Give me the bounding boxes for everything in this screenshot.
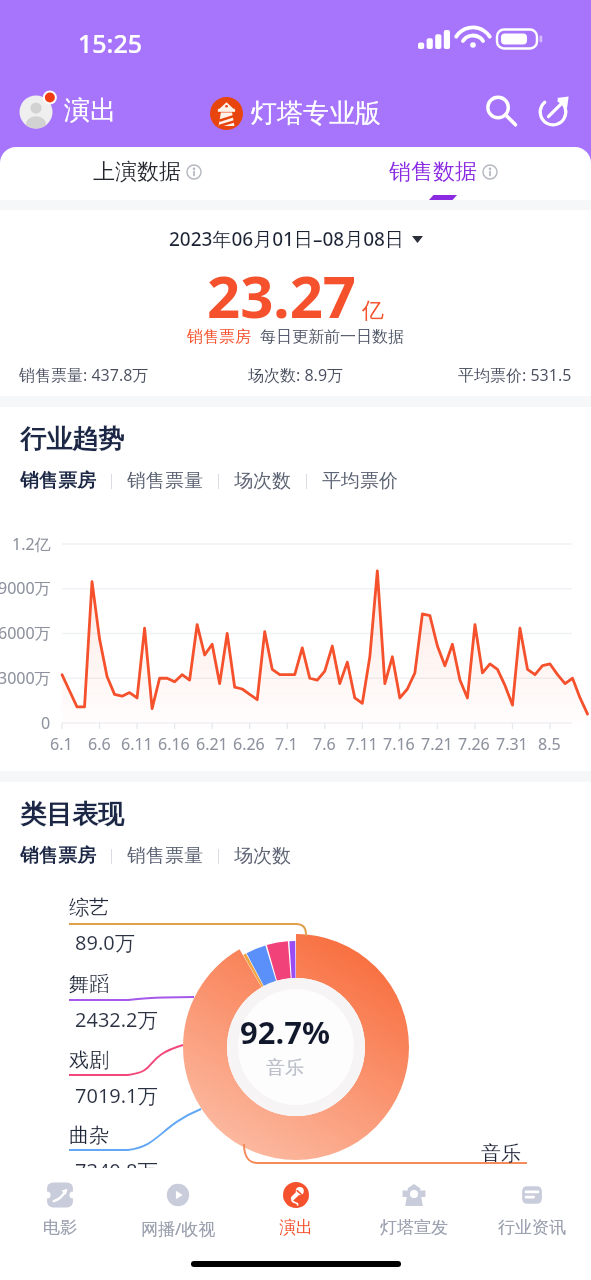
staticText: 9000万 bbox=[0, 577, 51, 599]
staticText: 1.2亿 bbox=[12, 533, 51, 555]
staticText: 7.6 bbox=[313, 733, 336, 755]
staticText: 演出 bbox=[279, 1217, 313, 1238]
staticText: 7.11 bbox=[346, 733, 378, 755]
button[interactable]: 灯塔宣发 bbox=[355, 1168, 473, 1280]
staticText: 销售票量: 437.8万 bbox=[19, 364, 149, 386]
staticText: 行业趋势 bbox=[20, 423, 124, 456]
staticText: 92.7% bbox=[240, 1011, 330, 1053]
staticText: 7.16 bbox=[383, 733, 415, 755]
staticText: 0 bbox=[41, 712, 51, 734]
button[interactable]: 场次数 bbox=[234, 844, 291, 868]
button[interactable]: 网播/收视 bbox=[119, 1168, 237, 1280]
button[interactable]: 演出 bbox=[237, 1168, 355, 1280]
staticText: 6.11 bbox=[121, 733, 153, 755]
staticText: 亿 bbox=[362, 297, 384, 325]
button[interactable]: 平均票价 bbox=[322, 469, 398, 493]
staticText: 销售票房 bbox=[20, 844, 96, 868]
staticText: 戏剧 bbox=[69, 1048, 109, 1073]
staticText: 舞蹈 bbox=[69, 972, 109, 997]
staticText: 6000万 bbox=[0, 622, 51, 644]
staticText: 音乐 bbox=[266, 1056, 304, 1080]
staticText: 类目表现 bbox=[20, 798, 124, 831]
button[interactable]: 场次数 bbox=[234, 469, 291, 493]
button[interactable]: 销售票量 bbox=[127, 469, 203, 493]
staticText: 场次数 bbox=[234, 469, 291, 493]
staticText: 7.26 bbox=[458, 733, 490, 755]
staticText: 8.5 bbox=[538, 733, 561, 755]
staticText: 7.21 bbox=[421, 733, 453, 755]
button[interactable]: Share bbox=[531, 87, 577, 133]
staticText: 场次数 bbox=[234, 844, 291, 868]
staticText: 2432.2万 bbox=[75, 1006, 158, 1033]
staticText: 销售票房 bbox=[20, 469, 96, 493]
staticText: 6.26 bbox=[233, 733, 265, 755]
staticText: 灯塔宣发 bbox=[380, 1217, 448, 1238]
staticText: 7.1 bbox=[275, 733, 298, 755]
button[interactable]: 灯塔专业版 bbox=[210, 97, 381, 130]
staticText: 3000万 bbox=[0, 667, 51, 689]
staticText: 15:25 bbox=[78, 26, 143, 60]
button[interactable]: 电影 bbox=[0, 1168, 119, 1280]
staticText: 23.27 bbox=[207, 256, 357, 335]
staticText: 平均票价: 531.5 bbox=[458, 364, 572, 386]
staticText: 网播/收视 bbox=[141, 1217, 216, 1240]
staticText: 电影 bbox=[43, 1217, 77, 1238]
staticText: 6.1 bbox=[50, 733, 73, 755]
staticText: 销售票量 bbox=[127, 469, 203, 493]
button[interactable]: 行业资讯 bbox=[473, 1168, 591, 1280]
staticText: 7019.1万 bbox=[75, 1082, 158, 1109]
staticText: 音乐 bbox=[481, 1141, 521, 1166]
staticText: 6.16 bbox=[158, 733, 190, 755]
staticText: 每日更新前一日数据 bbox=[260, 327, 404, 347]
staticText: 上演数据 bbox=[93, 158, 181, 186]
staticText: 6.6 bbox=[88, 733, 111, 755]
staticText: 演出 bbox=[64, 94, 116, 127]
staticText: 销售票房 bbox=[187, 327, 251, 347]
staticText: 综艺 bbox=[69, 895, 109, 920]
button[interactable]: 销售票量 bbox=[127, 844, 203, 868]
staticText: 2023年06月01日–08月08日 bbox=[169, 226, 404, 252]
staticText: 曲杂 bbox=[69, 1123, 109, 1148]
button[interactable]: 演出 bbox=[18, 90, 116, 130]
staticText: 6.21 bbox=[196, 733, 228, 755]
staticText: 销售票量 bbox=[127, 844, 203, 868]
staticText: 7340.8万 bbox=[75, 1157, 158, 1184]
staticText: 行业资讯 bbox=[498, 1217, 566, 1238]
staticText: 场次数: 8.9万 bbox=[248, 364, 344, 386]
staticText: 7.31 bbox=[496, 733, 528, 755]
staticText: 89.0万 bbox=[75, 929, 135, 956]
staticText: 平均票价 bbox=[322, 469, 398, 493]
staticText: 销售数据 bbox=[389, 158, 477, 186]
staticText: 灯塔专业版 bbox=[251, 97, 381, 130]
button[interactable]: Search bbox=[477, 87, 523, 133]
button[interactable]: 上演数据 bbox=[0, 147, 295, 200]
button[interactable]: 销售票房 bbox=[20, 844, 96, 868]
button[interactable]: 销售数据 bbox=[295, 147, 591, 200]
button[interactable]: 2023年06月01日–08月08日 bbox=[0, 226, 591, 252]
button[interactable]: 销售票房 bbox=[20, 469, 96, 493]
